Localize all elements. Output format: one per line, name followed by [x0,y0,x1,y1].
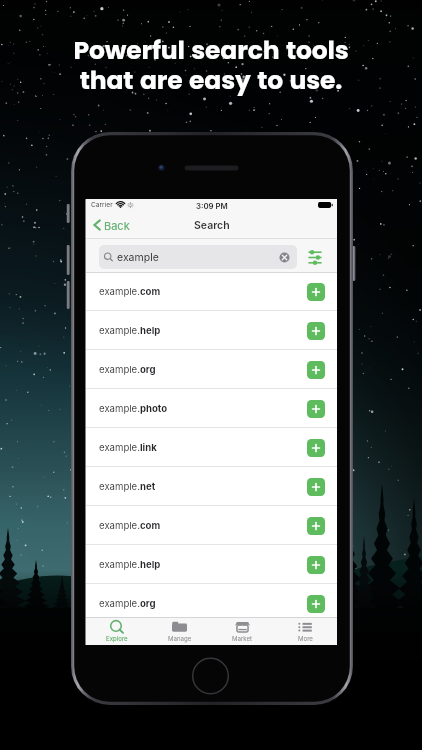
staticText: example [117,251,277,264]
button[interactable]: example.help [86,311,337,350]
button[interactable]: Market [211,617,274,645]
button[interactable]: Manage [148,617,211,645]
button[interactable]: Add [307,556,325,574]
staticText: 3:09 PM [196,201,228,210]
button[interactable]: Add [307,283,325,301]
button[interactable]: example.link [86,428,337,467]
staticText: Explore [106,635,128,642]
staticText: example.help [99,325,161,337]
button[interactable]: Add [307,478,325,496]
staticText: example.org [99,364,156,376]
button[interactable]: Back [93,214,130,236]
staticText: Manage [168,635,192,642]
button[interactable]: Add [307,439,325,457]
button[interactable]: example.com [86,272,337,311]
staticText: example.photo [99,403,168,415]
button[interactable]: Add [307,322,325,340]
staticText: Back [104,219,130,232]
button[interactable]: example.org [86,584,337,623]
button[interactable]: Filters [306,248,324,266]
staticText: Carrier [91,201,113,209]
button[interactable]: Add [307,517,325,535]
staticText: example.org [99,598,156,610]
button[interactable]: example.org [86,350,337,389]
button[interactable]: More [274,617,337,645]
staticText: example.help [99,559,161,571]
button[interactable]: Add [307,361,325,379]
staticText: Market [232,635,253,642]
staticText: example.com [99,286,161,298]
button[interactable]: Add [307,400,325,418]
button[interactable]: example.net [86,467,337,506]
button[interactable]: Add [307,595,325,613]
button[interactable]: example.photo [86,389,337,428]
button[interactable]: example.com [86,506,337,545]
staticText: Powerful search tools that are easy to u… [73,33,349,97]
staticText: example.link [99,442,157,454]
staticText: Search [194,219,230,232]
button[interactable]: example [99,245,297,269]
staticText: More [298,635,313,642]
staticText: example.net [99,481,156,493]
button[interactable]: Explore [86,617,148,645]
button[interactable]: Clear text [277,247,292,267]
staticText: example.com [99,520,161,532]
button[interactable]: example.help [86,545,337,584]
